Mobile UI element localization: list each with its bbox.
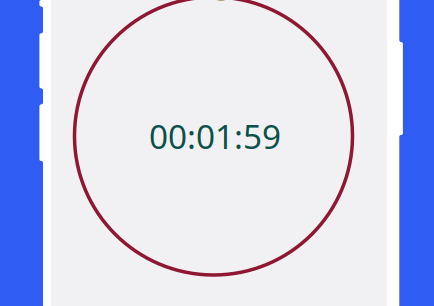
staticText: 00:01:59 (149, 114, 281, 158)
